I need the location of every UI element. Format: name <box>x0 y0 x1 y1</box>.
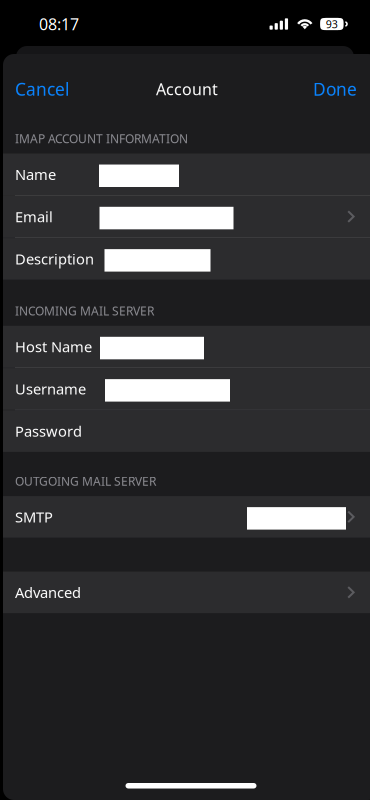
staticText: Name <box>15 164 56 184</box>
staticText: 93 <box>326 17 338 31</box>
staticText: Advanced <box>15 583 81 602</box>
button[interactable]: Name <box>3 153 370 195</box>
staticText: Username <box>15 379 86 399</box>
button[interactable]: Description <box>3 238 370 280</box>
staticText: Host Name <box>15 337 92 356</box>
button[interactable]: Username <box>3 368 370 410</box>
button[interactable]: Done <box>303 67 370 111</box>
staticText: Account <box>156 78 218 100</box>
button[interactable]: Password <box>3 410 370 452</box>
staticText: Description <box>15 249 94 269</box>
staticText: Password <box>15 421 82 441</box>
button[interactable]: Host Name <box>3 326 370 367</box>
staticText: OUTGOING MAIL SERVER <box>15 473 156 489</box>
staticText: INCOMING MAIL SERVER <box>15 303 154 319</box>
button[interactable]: SMTP <box>3 496 370 538</box>
staticText: Email <box>15 207 53 226</box>
staticText: SMTP <box>15 507 53 527</box>
button[interactable]: Advanced <box>3 572 370 613</box>
staticText: Done <box>313 77 357 100</box>
staticText: Cancel <box>15 77 69 100</box>
staticText: IMAP ACCOUNT INFORMATION <box>15 131 188 146</box>
button[interactable]: Email <box>3 196 370 237</box>
button[interactable]: Cancel <box>3 67 79 111</box>
staticText: 08:17 <box>39 13 79 35</box>
